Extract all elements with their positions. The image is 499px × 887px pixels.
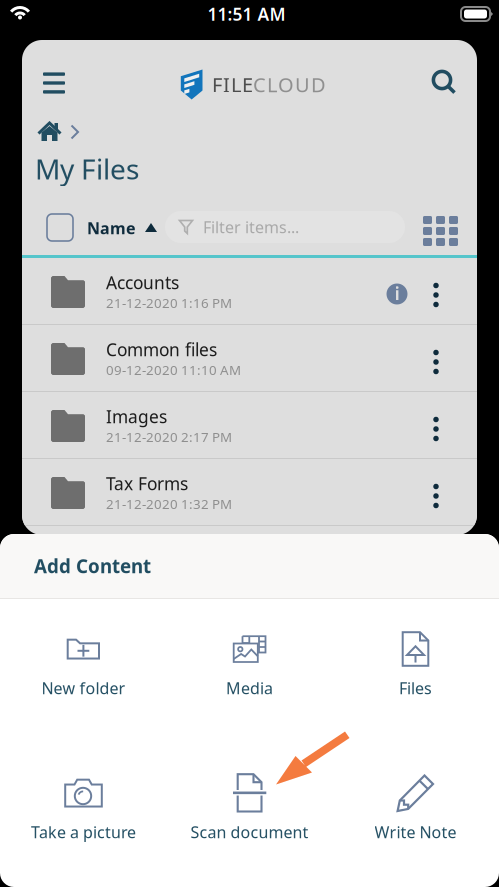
button[interactable]: More options <box>421 275 451 315</box>
staticText: i <box>394 282 399 305</box>
staticText: Scan document <box>190 821 308 843</box>
staticText: Take a picture <box>31 821 136 843</box>
staticText: Accounts <box>106 271 179 294</box>
button[interactable]: Images <box>22 392 477 458</box>
staticText: Common files <box>106 338 217 361</box>
button[interactable]: Accounts <box>22 258 477 324</box>
button[interactable]: Search <box>427 66 459 98</box>
button[interactable]: Menu <box>34 63 74 103</box>
button[interactable]: Write Note <box>332 756 498 846</box>
button[interactable]: Scan document <box>166 756 332 846</box>
button[interactable]: Take a picture <box>0 756 166 846</box>
staticText: 21-12-2020 1:32 PM <box>106 495 232 513</box>
button[interactable]: More options <box>421 409 451 449</box>
button[interactable]: Filter items... <box>165 211 405 243</box>
button[interactable]: Tax Forms <box>22 459 477 525</box>
staticText: Add Content <box>34 554 151 578</box>
staticText: 21-12-2020 1:16 PM <box>106 294 232 312</box>
staticText: Files <box>399 677 432 699</box>
button[interactable]: More options <box>421 342 451 382</box>
staticText: Filter items... <box>203 216 299 238</box>
staticText: 11:51 AM <box>207 2 285 25</box>
staticText: CLOUD <box>253 71 326 98</box>
staticText: Tax Forms <box>106 472 188 495</box>
staticText: 09-12-2020 11:10 AM <box>106 361 241 379</box>
staticText: New folder <box>41 677 125 699</box>
button[interactable]: Details <box>382 279 412 309</box>
button[interactable]: More options <box>421 476 451 516</box>
button[interactable]: New folder <box>0 612 166 702</box>
button[interactable]: Home <box>38 122 61 142</box>
staticText: FILE <box>212 71 253 98</box>
button[interactable]: Files <box>332 612 498 702</box>
button[interactable]: Media <box>166 612 332 702</box>
staticText: 21-12-2020 2:17 PM <box>106 428 232 446</box>
button[interactable]: Common files <box>22 325 477 391</box>
staticText: Images <box>106 405 167 428</box>
staticText: My Files <box>35 150 139 187</box>
button[interactable]: Select all <box>47 214 73 241</box>
button[interactable]: Grid view <box>423 214 458 248</box>
button[interactable]: Name <box>87 213 157 243</box>
staticText: Name <box>87 217 136 239</box>
staticText: Media <box>226 677 273 699</box>
staticText: Write Note <box>374 821 456 843</box>
